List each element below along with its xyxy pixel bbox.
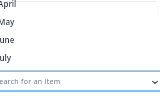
button[interactable]: June <box>0 30 160 48</box>
button[interactable]: Search for an item <box>0 70 160 92</box>
staticText: June <box>0 34 15 45</box>
staticText: July <box>0 52 12 63</box>
button[interactable]: May <box>0 12 160 30</box>
staticText: April <box>0 0 17 9</box>
staticText: Search for an item <box>0 77 61 87</box>
other: Show suggestions <box>152 79 158 85</box>
staticText: May <box>0 16 15 27</box>
button[interactable]: July <box>0 48 160 66</box>
button[interactable]: April <box>0 0 160 12</box>
